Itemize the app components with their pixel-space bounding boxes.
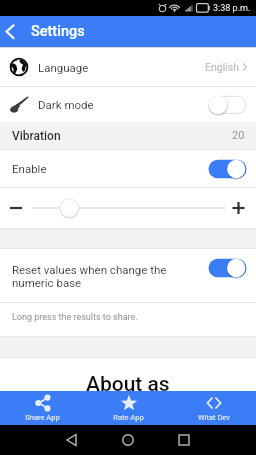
staticText: Share App — [25, 413, 60, 422]
button[interactable]: Share App — [0, 391, 85, 425]
staticText: Language — [38, 61, 89, 74]
button[interactable]: Rate App — [86, 391, 171, 425]
button[interactable]: Back — [0, 16, 24, 47]
staticText: Dark mode — [38, 98, 94, 111]
staticText: Reset values when change the numeric bas… — [12, 263, 167, 289]
staticText: Vibration — [12, 129, 61, 143]
button[interactable]: Enable — [0, 150, 256, 187]
staticText: 3:38 p.m. — [213, 3, 251, 14]
staticText: About as — [86, 372, 170, 397]
button[interactable]: Dark mode — [0, 87, 256, 122]
staticText: Long press the results to share. — [12, 312, 138, 323]
staticText: Enable — [12, 162, 47, 175]
staticText: 20 — [232, 129, 245, 142]
button[interactable]: Language — [0, 48, 256, 86]
staticText: Witat Dev — [198, 413, 230, 422]
staticText: Settings — [31, 23, 85, 40]
button[interactable]: Reset values when change the numeric bas… — [0, 249, 256, 302]
staticText: English — [205, 61, 239, 73]
staticText: Rate App — [113, 413, 144, 422]
button[interactable]: Witat Dev — [171, 391, 256, 425]
